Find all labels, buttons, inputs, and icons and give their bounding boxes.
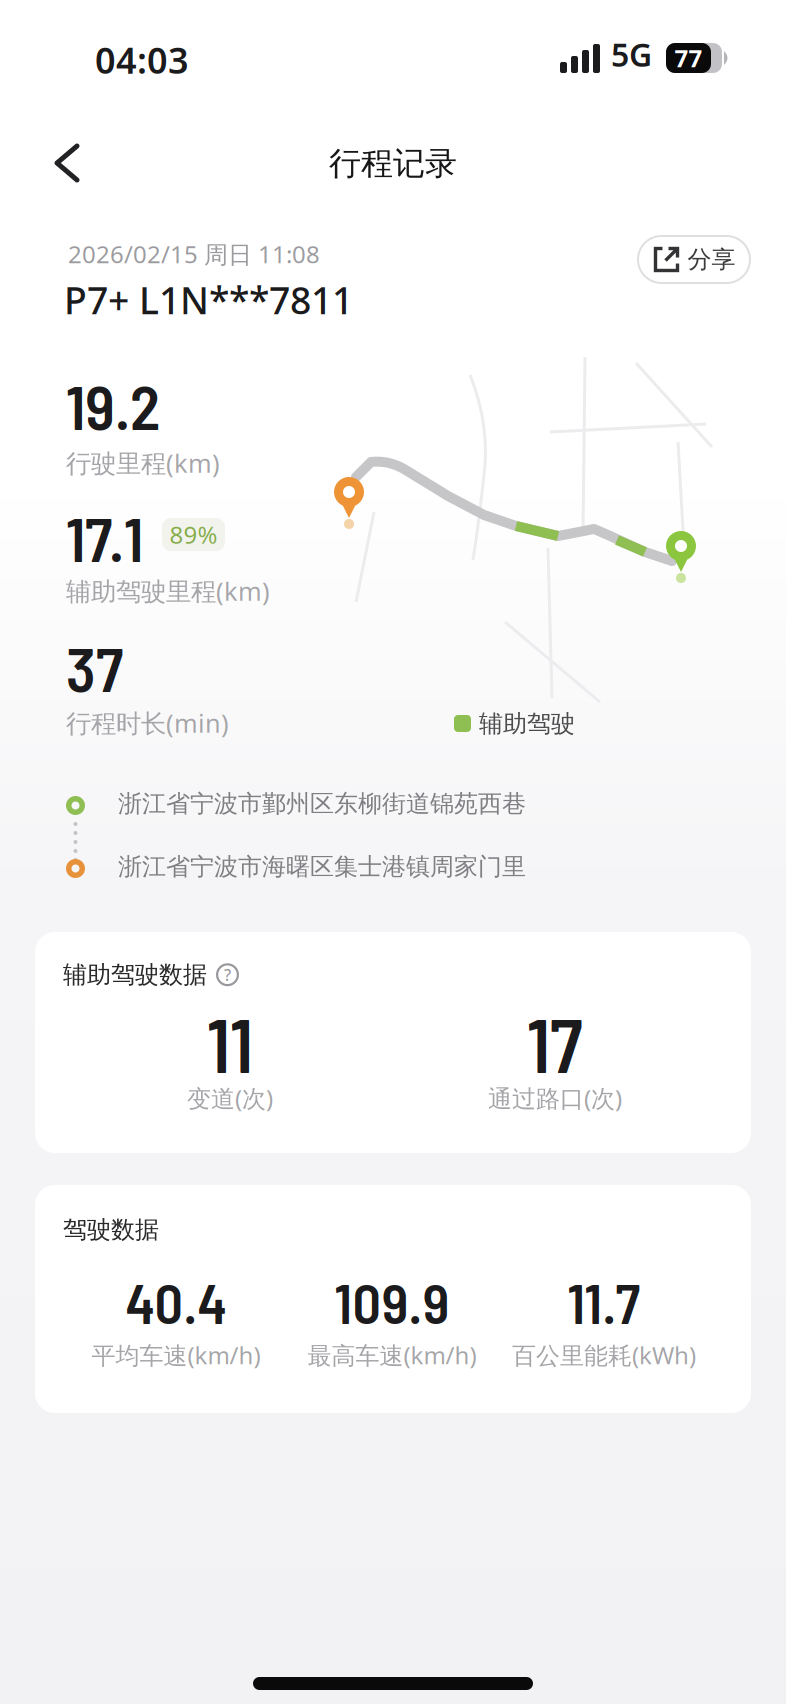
staticText: 19.2 <box>66 368 160 442</box>
staticText: 2026/02/15 周日 11:08 <box>68 238 320 270</box>
staticText: 平均车速(km/h) <box>91 1339 260 1371</box>
staticText: ? <box>224 964 231 985</box>
staticText: 变道(次) <box>187 1082 273 1114</box>
staticText: 89% <box>169 519 217 550</box>
staticText: 百公里能耗(kWh) <box>512 1339 696 1371</box>
staticText: 17.1 <box>66 500 143 574</box>
staticText: 04:03 <box>95 36 189 84</box>
staticText: P7+ L1N***7811 <box>64 275 353 325</box>
staticText: 行驶里程(km) <box>66 446 220 480</box>
staticText: 辅助驾驶数据 <box>63 960 207 989</box>
staticText: 辅助驾驶 <box>479 709 575 738</box>
staticText: 17 <box>527 999 583 1088</box>
staticText: 77 <box>674 42 702 74</box>
staticText: 行程记录 <box>329 144 457 183</box>
staticText: 浙江省宁波市鄞州区东柳街道锦苑西巷 <box>118 789 526 818</box>
staticText: 37 <box>66 630 123 704</box>
staticText: 11.7 <box>567 1268 640 1335</box>
button[interactable]: ? <box>216 963 239 986</box>
staticText: 11 <box>207 999 253 1088</box>
button[interactable]: 分享 <box>637 235 751 284</box>
staticText: 通过路口(次) <box>488 1082 622 1114</box>
staticText: 109.9 <box>334 1268 449 1335</box>
button[interactable] <box>52 142 84 184</box>
staticText: 辅助驾驶里程(km) <box>66 574 270 608</box>
staticText: 最高车速(km/h) <box>307 1339 476 1371</box>
staticText: 5G <box>611 33 652 75</box>
staticText: 40.4 <box>125 1268 226 1335</box>
staticText: 浙江省宁波市海曙区集士港镇周家门里 <box>118 852 526 881</box>
staticText: 分享 <box>687 245 735 274</box>
staticText: 驾驶数据 <box>63 1215 159 1244</box>
staticText: 行程时长(min) <box>66 706 229 740</box>
